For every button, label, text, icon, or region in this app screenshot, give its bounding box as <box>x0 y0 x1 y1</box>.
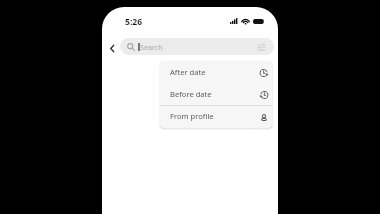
button[interactable]: Filters <box>254 40 268 54</box>
staticText: Search <box>140 42 163 52</box>
staticText: From profile <box>170 111 214 121</box>
staticText: 5:26 <box>125 16 143 28</box>
button[interactable]: From profile <box>160 106 272 128</box>
staticText: After date <box>170 67 206 77</box>
button[interactable]: Before date <box>160 83 272 105</box>
staticText: Before date <box>170 89 212 99</box>
button[interactable]: Search <box>120 38 274 55</box>
button[interactable]: Back <box>104 40 120 56</box>
button[interactable]: After date <box>160 61 272 83</box>
